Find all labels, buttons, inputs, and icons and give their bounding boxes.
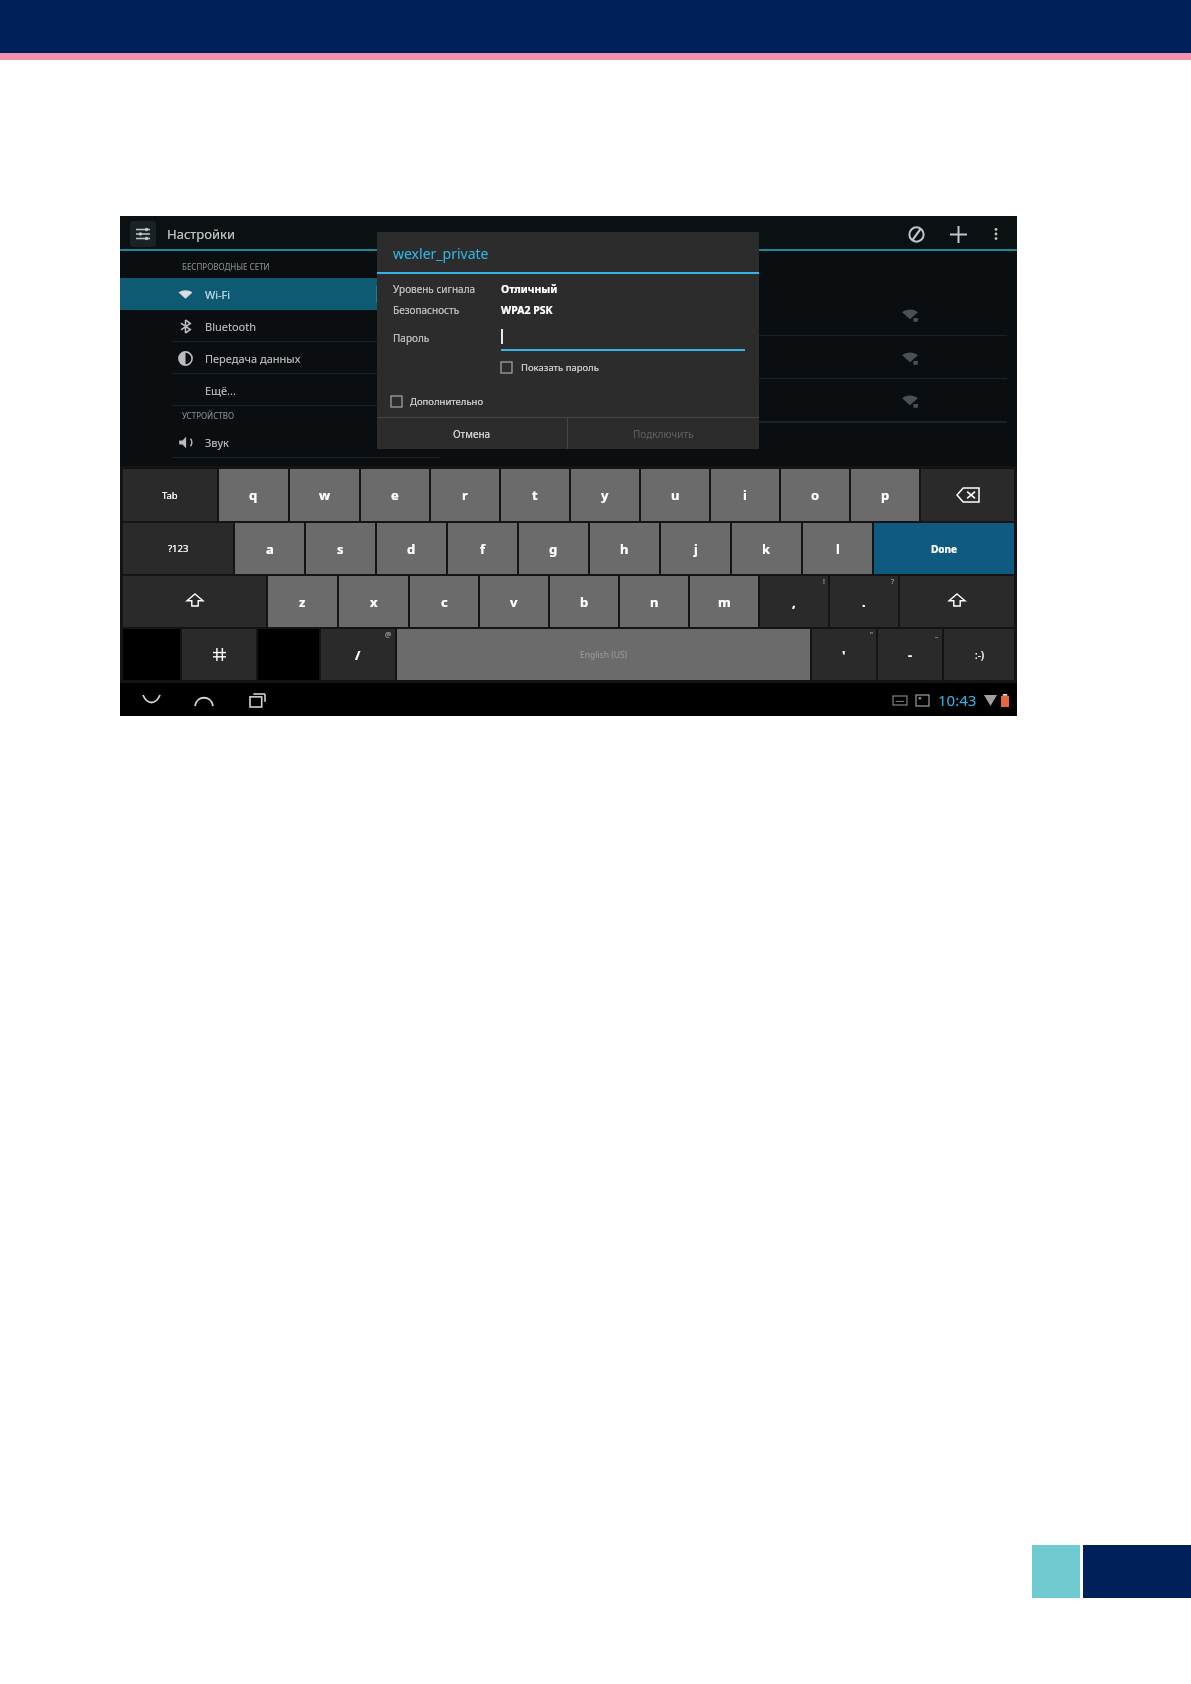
- button[interactable]: ?123: [123, 523, 233, 574]
- staticText: i: [743, 486, 747, 504]
- button[interactable]: x: [339, 576, 408, 627]
- button[interactable]: Дополнительно: [391, 395, 484, 408]
- staticText: wexler_private: [393, 244, 489, 263]
- staticText: ': [842, 646, 846, 664]
- staticText: Безопасность: [393, 303, 460, 317]
- button[interactable]: f: [448, 523, 517, 574]
- button[interactable]: c: [410, 576, 478, 627]
- staticText: s: [337, 540, 344, 558]
- button[interactable]: a: [235, 523, 304, 574]
- button[interactable]: Bluetooth: [120, 310, 440, 342]
- button[interactable]: Switch keyboard: [182, 629, 256, 680]
- button[interactable]: Back: [134, 687, 168, 713]
- button[interactable]: b: [550, 576, 618, 627]
- staticText: l: [836, 540, 840, 558]
- button[interactable]: y: [571, 469, 639, 521]
- button[interactable]: Settings app icon: [130, 221, 156, 247]
- button[interactable]: Shift: [900, 576, 1014, 627]
- button[interactable]: m: [690, 576, 758, 627]
- button[interactable]: WPS: [901, 219, 931, 249]
- button[interactable]: e: [361, 469, 429, 521]
- staticText: o: [811, 486, 820, 504]
- staticText: Пароль: [393, 331, 430, 345]
- button[interactable]: u: [641, 469, 709, 521]
- staticText: Настройки: [167, 225, 236, 243]
- staticText: w: [319, 486, 331, 504]
- button[interactable]: w: [290, 469, 359, 521]
- button[interactable]: More options: [983, 221, 1009, 247]
- staticText: ,: [792, 593, 796, 611]
- button[interactable]: q: [219, 469, 288, 521]
- button[interactable]: :-): [944, 629, 1014, 680]
- button[interactable]: h: [590, 523, 659, 574]
- button[interactable]: Передача данных: [120, 342, 440, 374]
- staticText: !: [823, 577, 825, 587]
- button[interactable]: Home: [187, 687, 221, 713]
- button[interactable]: k: [732, 523, 801, 574]
- staticText: Передача данных: [205, 351, 301, 366]
- staticText: a: [266, 540, 274, 558]
- button[interactable]: Подключить: [568, 418, 759, 449]
- button[interactable]: v: [480, 576, 548, 627]
- staticText: @: [385, 630, 392, 640]
- staticText: n: [650, 593, 659, 611]
- staticText: УСТРОЙСТВО: [182, 410, 235, 421]
- staticText: ?123: [168, 542, 189, 555]
- staticText: Подключить: [633, 427, 694, 441]
- button[interactable]: t: [501, 469, 569, 521]
- staticText: Звук: [205, 435, 229, 450]
- button[interactable]: [501, 325, 745, 351]
- button[interactable]: Отмена: [377, 418, 567, 449]
- staticText: Показать пароль: [521, 361, 599, 374]
- staticText: Bluetooth: [205, 319, 257, 334]
- staticText: u: [671, 486, 680, 504]
- staticText: b: [580, 593, 589, 611]
- button[interactable]: d: [377, 523, 446, 574]
- button[interactable]: Показать пароль: [501, 361, 599, 374]
- staticText: k: [762, 540, 771, 558]
- button[interactable]: s: [306, 523, 375, 574]
- button[interactable]: Add network: [943, 219, 973, 249]
- staticText: y: [601, 486, 609, 504]
- button[interactable]: l: [803, 523, 872, 574]
- button[interactable]: Recent apps: [240, 687, 274, 713]
- button[interactable]: Tab: [123, 469, 217, 521]
- staticText: j: [694, 540, 698, 558]
- staticText: Дополнительно: [410, 395, 484, 408]
- staticText: p: [881, 486, 890, 504]
- button[interactable]: .: [830, 576, 898, 627]
- button[interactable]: ,: [760, 576, 828, 627]
- button[interactable]: p: [851, 469, 919, 521]
- button[interactable]: /: [321, 629, 395, 680]
- button[interactable]: z: [268, 576, 337, 627]
- button[interactable]: Звук: [120, 426, 440, 458]
- button[interactable]: ': [812, 629, 876, 680]
- staticText: -: [908, 646, 913, 664]
- button[interactable]: Done: [874, 523, 1014, 574]
- button[interactable]: i: [711, 469, 779, 521]
- staticText: БЕСПРОВОДНЫЕ СЕТИ: [182, 261, 270, 272]
- staticText: Tab: [162, 489, 178, 502]
- button[interactable]: n: [620, 576, 688, 627]
- staticText: ?: [891, 577, 895, 587]
- button[interactable]: Backspace: [921, 469, 1014, 521]
- button[interactable]: Shift: [123, 576, 266, 627]
- button[interactable]: Wi-Fi: [120, 278, 440, 310]
- staticText: z: [299, 593, 306, 611]
- staticText: Уровень сигнала: [393, 282, 476, 296]
- staticText: t: [532, 486, 538, 504]
- button[interactable]: Ещё...: [120, 374, 440, 406]
- button[interactable]: o: [781, 469, 849, 521]
- staticText: q: [249, 486, 258, 504]
- button[interactable]: r: [431, 469, 499, 521]
- button[interactable]: j: [661, 523, 730, 574]
- staticText: 10:43: [938, 690, 977, 710]
- button[interactable]: -: [878, 629, 942, 680]
- staticText: Отмена: [453, 427, 491, 441]
- button[interactable]: g: [519, 523, 588, 574]
- staticText: d: [407, 540, 416, 558]
